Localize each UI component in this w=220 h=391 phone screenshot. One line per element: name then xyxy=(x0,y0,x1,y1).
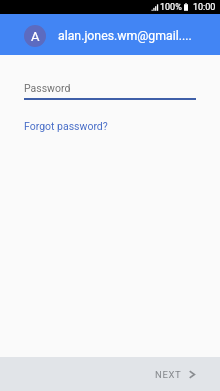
staticText: alan.jones.wm@gmail.... xyxy=(58,29,192,43)
button[interactable]: NEXT xyxy=(141,369,220,380)
button[interactable]: Forgot password? xyxy=(24,120,108,132)
staticText: NEXT xyxy=(155,369,182,380)
staticText: Forgot password? xyxy=(24,120,108,132)
other: Battery full xyxy=(184,2,188,13)
button[interactable]: Password xyxy=(0,82,220,100)
staticText: 10:00 xyxy=(193,2,216,13)
staticText: Password xyxy=(24,82,71,94)
other: Signal strength xyxy=(150,2,157,13)
staticText: A xyxy=(31,29,40,44)
button[interactable]: A xyxy=(0,14,220,55)
staticText: 100% xyxy=(160,2,182,13)
